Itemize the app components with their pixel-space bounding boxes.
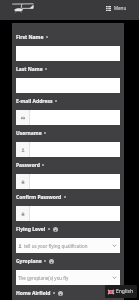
staticText: tell us your flying qualification bbox=[24, 243, 112, 249]
staticText: Menu bbox=[114, 5, 127, 11]
staticText: First Name bbox=[16, 34, 44, 41]
staticText: Last Name bbox=[16, 66, 43, 73]
staticText: Home Airfield bbox=[16, 290, 51, 297]
staticText: The gyroplane(s) you fly bbox=[18, 275, 112, 281]
staticText: Flying Level bbox=[16, 226, 46, 233]
button[interactable]: English bbox=[105, 285, 137, 298]
button[interactable]: The gyroplane(s) you fly bbox=[16, 270, 120, 285]
button[interactable] bbox=[16, 206, 120, 221]
staticText: Password bbox=[16, 162, 40, 169]
button[interactable]: tell us your flying qualification bbox=[16, 238, 120, 253]
button[interactable] bbox=[16, 110, 120, 125]
staticText: E-mail Address bbox=[16, 98, 53, 105]
button[interactable] bbox=[16, 174, 120, 189]
staticText: Gyroplane bbox=[16, 258, 42, 265]
button[interactable]: Menu bbox=[106, 5, 127, 11]
button[interactable] bbox=[16, 142, 120, 157]
staticText: Confirm Password bbox=[16, 194, 62, 201]
staticText: Username bbox=[16, 130, 42, 137]
staticText: English bbox=[116, 288, 134, 295]
button[interactable]: Home bbox=[11, 3, 34, 13]
